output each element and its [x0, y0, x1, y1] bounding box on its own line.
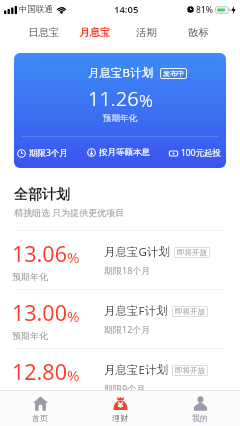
staticText: 即将开放: [175, 307, 205, 316]
staticText: 活期: [136, 26, 157, 39]
staticText: 预期年化: [12, 330, 48, 341]
button[interactable]: 散标: [172, 19, 224, 46]
button[interactable]: 我的: [160, 396, 240, 426]
staticText: 81%: [196, 4, 213, 16]
button[interactable]: 月息宝: [69, 19, 120, 46]
staticText: 月息宝: [79, 26, 111, 39]
other: 理财: [113, 396, 128, 411]
button[interactable]: 月息宝B计划: [14, 53, 226, 168]
staticText: 理财: [112, 413, 128, 423]
staticText: 13.00: [12, 298, 67, 327]
button[interactable]: 日息宝: [18, 19, 69, 46]
button[interactable]: 活期: [120, 19, 172, 46]
staticText: 13.06: [12, 239, 67, 268]
staticText: 预期年化: [103, 113, 137, 124]
staticText: 12.80: [12, 357, 67, 386]
staticText: 即将开放: [177, 248, 207, 257]
staticText: 月息宝G计划: [104, 244, 170, 260]
staticText: %: [67, 247, 80, 267]
staticText: 按月等额本息: [99, 147, 150, 158]
staticText: 期限18个月: [104, 264, 151, 276]
staticText: 11.26: [88, 85, 139, 112]
staticText: 月息宝B计划: [88, 65, 153, 81]
button[interactable]: 首页: [0, 396, 80, 426]
staticText: 精挑细选 只为提供更优项目: [14, 206, 125, 218]
staticText: 我的: [192, 413, 208, 423]
staticText: 月息宝F计划: [104, 303, 168, 319]
staticText: 发布中: [163, 69, 184, 78]
staticText: %: [67, 306, 80, 326]
staticText: 散标: [188, 26, 209, 39]
button[interactable]: 13.00: [0, 290, 240, 348]
staticText: 14:05: [114, 3, 139, 16]
staticText: 月息宝E计划: [104, 362, 168, 378]
staticText: 全部计划: [14, 186, 70, 204]
staticText: 中国联通: [19, 4, 53, 15]
staticText: %: [139, 89, 153, 112]
staticText: 期限12个月: [104, 323, 151, 335]
staticText: 期限3个月: [29, 147, 68, 159]
button[interactable]: 13.06: [0, 231, 240, 289]
staticText: 预期年化: [12, 389, 48, 400]
button[interactable]: 12.80: [0, 349, 240, 407]
staticText: 首页: [32, 413, 48, 423]
staticText: 预期年化: [12, 271, 48, 282]
button[interactable]: 理财: [80, 396, 160, 426]
staticText: 日息宝: [28, 26, 60, 39]
staticText: 期限9个月: [104, 382, 146, 394]
staticText: %: [67, 365, 80, 385]
staticText: 100元起投: [181, 147, 222, 159]
staticText: 即将开放: [175, 366, 205, 375]
